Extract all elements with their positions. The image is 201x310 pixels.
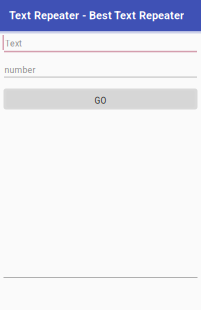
staticText: Text Repeater - Best Text Repeater xyxy=(9,9,184,22)
staticText: number xyxy=(4,65,35,75)
button[interactable]: number xyxy=(0,62,197,84)
button[interactable]: GO xyxy=(3,88,197,109)
button[interactable]: Text xyxy=(0,35,197,57)
staticText: GO xyxy=(94,96,106,106)
staticText: Text xyxy=(5,38,22,49)
